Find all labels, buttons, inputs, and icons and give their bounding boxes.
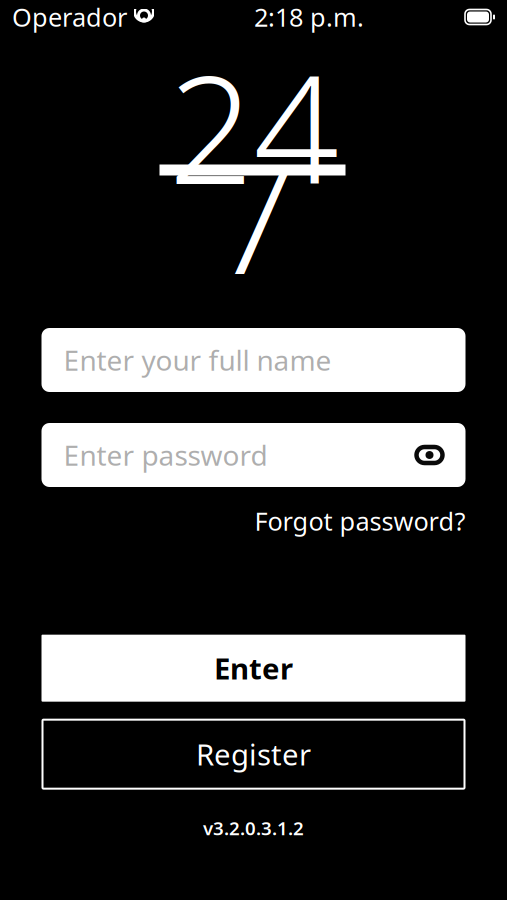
- staticText: Enter: [214, 649, 293, 688]
- button[interactable]: Enter your full name: [41, 328, 465, 392]
- staticText: Register: [196, 735, 311, 774]
- staticText: Enter your full name: [63, 341, 331, 379]
- staticText: Enter password: [63, 436, 267, 474]
- button[interactable]: Register: [42, 720, 464, 789]
- staticText: v3.2.0.3.1.2: [203, 816, 304, 840]
- staticText: 7: [211, 117, 296, 315]
- staticText: 2:18 p.m.: [254, 0, 364, 34]
- button[interactable]: Enter password: [41, 423, 465, 487]
- button[interactable]: Forgot password?: [254, 504, 465, 538]
- button[interactable]: Enter: [41, 635, 465, 702]
- staticText: Operador: [12, 0, 127, 34]
- staticText: Forgot password?: [254, 504, 465, 538]
- staticText: 24: [168, 27, 338, 225]
